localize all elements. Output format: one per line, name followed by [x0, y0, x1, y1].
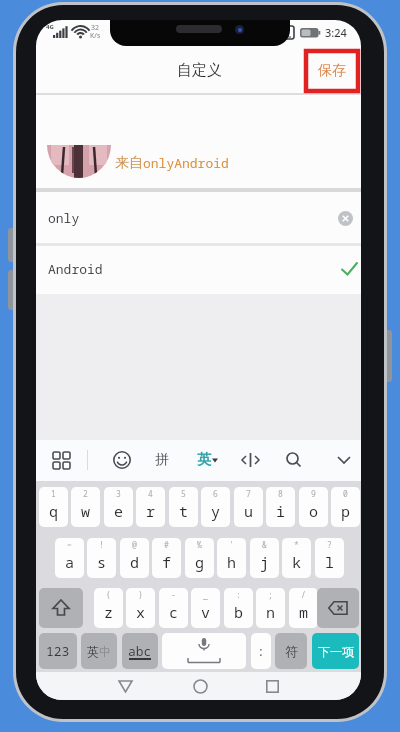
staticText: z — [104, 602, 114, 622]
staticText: 4 — [148, 488, 153, 499]
staticText: # — [164, 539, 169, 550]
staticText: 2 — [83, 488, 88, 499]
button[interactable]: only — [36, 192, 361, 243]
button[interactable]: - — [159, 588, 188, 628]
staticText: 8 — [278, 488, 283, 499]
staticText: w — [81, 501, 91, 521]
staticText: 6 — [213, 488, 218, 499]
button[interactable]: 2 — [71, 487, 100, 527]
button[interactable] — [317, 588, 359, 628]
button[interactable]: ' — [217, 538, 246, 578]
button[interactable]: / — [289, 588, 318, 628]
button[interactable] — [236, 446, 264, 474]
button[interactable] — [185, 672, 215, 700]
staticText: o — [309, 501, 319, 521]
staticText: 4G — [46, 23, 54, 31]
button[interactable]: 6 — [201, 487, 230, 527]
staticText: d — [130, 552, 140, 572]
button[interactable]: 8 — [266, 487, 295, 527]
staticText: r — [146, 501, 156, 521]
button[interactable] — [47, 446, 75, 474]
button[interactable]: 3 — [104, 487, 133, 527]
button[interactable]: 9 — [299, 487, 328, 527]
button[interactable]: abc — [122, 633, 158, 669]
button[interactable]: ; — [256, 588, 285, 628]
staticText: ~ — [67, 539, 72, 550]
staticText: h — [227, 552, 237, 572]
staticText: 自定义 — [177, 61, 222, 80]
staticText: 英 — [87, 644, 99, 659]
staticText: x — [136, 602, 146, 622]
button[interactable]: 0 — [331, 487, 360, 527]
staticText: 7 — [246, 488, 251, 499]
staticText: ' — [229, 539, 234, 550]
button[interactable]: 保存 — [306, 51, 358, 91]
staticText: K/s — [90, 31, 101, 41]
staticText: 32 — [91, 23, 100, 33]
staticText: n — [266, 602, 276, 622]
staticText: b — [234, 602, 244, 622]
staticText: q — [49, 501, 59, 521]
staticText: ) — [138, 589, 143, 600]
staticText: 保存 — [318, 62, 346, 80]
button[interactable]: : — [224, 588, 253, 628]
staticText: 9 — [311, 488, 316, 499]
button[interactable]: 4 — [136, 487, 165, 527]
button[interactable]: ( — [94, 588, 123, 628]
button[interactable]: 符 — [275, 633, 307, 669]
button[interactable]: # — [152, 538, 181, 578]
button[interactable]: 下一项 — [312, 633, 359, 669]
staticText: _ — [203, 589, 208, 600]
button[interactable]: 拼 — [147, 446, 177, 474]
staticText: 中 — [99, 644, 111, 659]
button[interactable]: 1 — [39, 487, 68, 527]
staticText: g — [195, 552, 205, 572]
button[interactable] — [335, 208, 355, 228]
button[interactable]: & — [250, 538, 279, 578]
button[interactable] — [39, 588, 83, 628]
staticText: 3:24 — [325, 25, 347, 40]
staticText: u — [244, 501, 254, 521]
staticText: f — [162, 552, 172, 572]
button[interactable] — [162, 633, 246, 669]
button[interactable]: 123 — [39, 633, 77, 669]
staticText: s — [97, 552, 107, 572]
button[interactable]: % — [185, 538, 214, 578]
button[interactable]: 7 — [234, 487, 263, 527]
staticText: 来自 — [115, 154, 143, 172]
button[interactable]: ~ — [55, 538, 84, 578]
button[interactable]: * — [282, 538, 311, 578]
button[interactable] — [257, 672, 287, 700]
staticText: : — [257, 642, 265, 660]
button[interactable]: : — [251, 633, 271, 669]
button[interactable] — [108, 446, 136, 474]
staticText: onlyAndroid — [143, 154, 229, 172]
button[interactable]: Android — [36, 244, 361, 294]
button[interactable]: 英 — [188, 446, 228, 474]
button[interactable]: 英 — [81, 633, 117, 669]
button[interactable]: _ — [191, 588, 220, 628]
staticText: ! — [99, 539, 104, 550]
button[interactable]: ? — [315, 538, 344, 578]
staticText: l — [325, 552, 335, 572]
staticText: e — [114, 501, 124, 521]
button[interactable] — [330, 446, 358, 474]
staticText: ? — [327, 539, 332, 550]
staticText: p — [341, 501, 351, 521]
staticText: 英 — [197, 451, 211, 469]
staticText: 0 — [343, 488, 348, 499]
staticText: 123 — [46, 642, 70, 660]
button[interactable]: 5 — [169, 487, 198, 527]
staticText: ( — [106, 589, 111, 600]
staticText: 1 — [51, 488, 56, 499]
button[interactable]: ) — [126, 588, 155, 628]
staticText: a — [65, 552, 75, 572]
button[interactable]: ! — [87, 538, 116, 578]
staticText: 5 — [181, 488, 186, 499]
staticText: @ — [132, 539, 137, 550]
staticText: 拼 — [155, 451, 169, 469]
button[interactable] — [280, 446, 308, 474]
button[interactable]: @ — [120, 538, 149, 578]
button[interactable] — [110, 672, 140, 700]
staticText: abc — [128, 642, 152, 660]
